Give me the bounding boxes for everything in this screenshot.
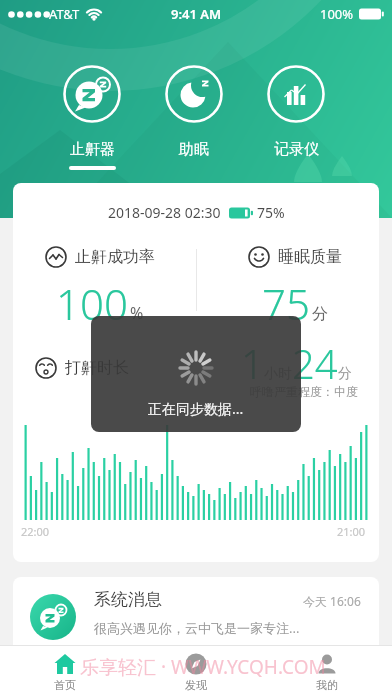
staticText: 100 [56, 275, 128, 332]
staticText: 睡眠质量 [278, 247, 342, 267]
staticText: 呼噜严重程度：中度 [250, 384, 358, 399]
staticText: 发现 [185, 678, 207, 692]
button[interactable]: 发现 [130, 645, 261, 696]
staticText: 2018-09-28 02:30 [108, 203, 221, 222]
button[interactable]: 记录仪 [267, 65, 325, 166]
button[interactable]: 助眠 [165, 65, 223, 166]
button[interactable]: 止鼾器 [63, 65, 121, 170]
staticText: 1 [241, 336, 264, 390]
staticText: 75% [257, 203, 285, 222]
staticText: 100% [320, 5, 354, 23]
button[interactable]: 系统消息 [13, 577, 379, 696]
staticText: 乐享轻汇 · WWW.YCQH.COM [80, 654, 326, 680]
staticText: 正在同步数据... [148, 399, 244, 418]
staticText: 止鼾器 [70, 140, 115, 159]
staticText: 24 [292, 336, 338, 390]
staticText: 止鼾成功率 [75, 247, 155, 267]
staticText: 分 [312, 304, 328, 324]
staticText: 21:00 [337, 524, 366, 539]
button[interactable]: 我的 [261, 645, 392, 696]
staticText: 我的 [316, 678, 338, 692]
staticText: 今天 16:06 [303, 593, 361, 609]
staticText: 助眠 [179, 140, 209, 159]
staticText: 首页 [54, 678, 76, 692]
staticText: 记录仪 [274, 140, 319, 159]
staticText: 22:00 [21, 524, 50, 539]
staticText: 打鼾时长 [65, 358, 129, 378]
staticText: % [130, 302, 144, 324]
staticText: 分 [338, 365, 352, 383]
staticText: AT&T [49, 5, 80, 23]
staticText: 75 [262, 275, 310, 332]
staticText: 系统消息 [94, 589, 162, 610]
button[interactable]: 首页 [0, 645, 130, 696]
staticText: 很高兴遇见你，云中飞是一家专注... [94, 619, 300, 637]
staticText: 9:41 AM [171, 5, 222, 23]
